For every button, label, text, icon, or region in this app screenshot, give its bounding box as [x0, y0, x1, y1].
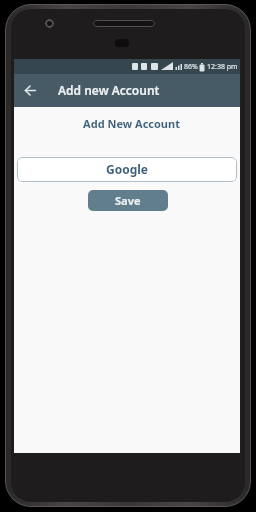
staticText: Add New Account — [23, 116, 240, 131]
button[interactable]: Google — [17, 157, 237, 182]
staticText: Add new Account — [58, 82, 160, 98]
staticText: 86% — [184, 62, 198, 72]
staticText: 12:38 pm — [207, 62, 238, 72]
button[interactable] — [14, 74, 47, 107]
button[interactable]: Save — [88, 190, 168, 211]
staticText: Save — [115, 193, 141, 208]
staticText: Google — [106, 161, 149, 177]
